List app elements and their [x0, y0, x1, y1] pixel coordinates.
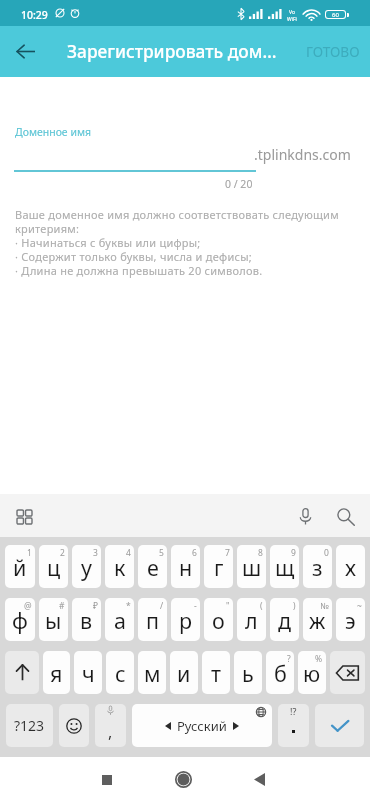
- button[interactable]: а: [105, 598, 134, 641]
- staticText: 10:29: [21, 8, 48, 22]
- staticText: %: [315, 653, 323, 665]
- button[interactable]: е: [138, 545, 167, 588]
- button[interactable]: !?: [278, 704, 309, 747]
- staticText: й: [13, 553, 27, 582]
- button[interactable]: ц: [39, 545, 68, 588]
- button[interactable]: б: [266, 651, 294, 694]
- other: Удалить: [336, 665, 359, 681]
- button[interactable]: д: [270, 598, 299, 641]
- staticText: Доменное имя: [15, 125, 92, 139]
- button[interactable]: п: [138, 598, 167, 641]
- button[interactable]: г: [204, 545, 233, 588]
- staticText: ~: [357, 600, 362, 612]
- button[interactable]: ю: [298, 651, 326, 694]
- button[interactable]: Главный экран: [161, 757, 206, 801]
- staticText: с: [115, 659, 126, 688]
- button[interactable]: л: [237, 598, 266, 641]
- staticText: щ: [275, 553, 295, 582]
- button[interactable]: ?123: [6, 704, 53, 747]
- staticText: п: [146, 606, 160, 635]
- staticText: г: [214, 553, 224, 582]
- button[interactable]: Shift: [5, 651, 39, 694]
- button[interactable]: ы: [39, 598, 68, 641]
- staticText: ": [226, 600, 230, 612]
- button[interactable]: х: [336, 545, 365, 588]
- button[interactable]: я: [43, 651, 70, 694]
- button[interactable]: ф: [5, 598, 35, 641]
- staticText: х: [345, 553, 356, 582]
- staticText: ?: [287, 653, 291, 665]
- button[interactable]: м: [138, 651, 166, 694]
- staticText: ц: [47, 553, 61, 582]
- button[interactable]: ь: [234, 651, 262, 694]
- button[interactable]: ч: [74, 651, 102, 694]
- button[interactable]: ГОТОВО: [295, 26, 370, 77]
- staticText: ): [293, 600, 296, 612]
- staticText: 6: [192, 547, 197, 559]
- staticText: 1: [27, 547, 32, 559]
- button[interactable]: т: [202, 651, 230, 694]
- staticText: д: [278, 606, 292, 635]
- staticText: 0 / 20: [225, 177, 253, 191]
- staticText: н: [179, 553, 193, 582]
- button[interactable]: Поиск: [325, 496, 366, 537]
- staticText: ф: [12, 606, 28, 635]
- staticText: к: [114, 553, 126, 582]
- staticText: р: [179, 606, 193, 635]
- staticText: ю: [303, 659, 321, 688]
- button[interactable]: щ: [270, 545, 299, 588]
- staticText: Зарегистрировать дом…: [67, 40, 277, 64]
- other: Shift: [15, 664, 30, 681]
- staticText: б: [274, 659, 287, 688]
- staticText: т: [211, 659, 221, 688]
- staticText: ы: [45, 606, 62, 635]
- staticText: ?123: [14, 716, 45, 735]
- button[interactable]: о: [204, 598, 233, 641]
- button[interactable]: й: [5, 545, 35, 588]
- staticText: ,: [108, 721, 113, 743]
- staticText: 60: [332, 11, 339, 18]
- button[interactable]: Удалить: [330, 651, 365, 694]
- staticText: ж: [309, 606, 326, 635]
- staticText: #: [59, 600, 65, 612]
- staticText: и: [177, 659, 191, 688]
- staticText: 8: [258, 547, 263, 559]
- button[interactable]: ж: [303, 598, 332, 641]
- staticText: в: [80, 606, 93, 635]
- staticText: 3: [93, 547, 98, 559]
- button[interactable]: Недавние приложения: [84, 757, 129, 801]
- button[interactable]: Готово: [315, 704, 364, 747]
- staticText: ч: [82, 659, 95, 688]
- staticText: /: [160, 600, 164, 612]
- staticText: э: [345, 606, 356, 635]
- staticText: @: [24, 600, 32, 612]
- button[interactable]: к: [105, 545, 134, 588]
- staticText: е: [147, 553, 159, 582]
- button[interactable]: з: [303, 545, 332, 588]
- staticText: ь: [242, 659, 254, 688]
- button[interactable]: Назад: [0, 26, 51, 77]
- staticText: -: [194, 600, 197, 612]
- staticText: Русский: [177, 717, 227, 735]
- button[interactable]: у: [72, 545, 101, 588]
- button[interactable]: с: [106, 651, 134, 694]
- button[interactable]: Назад: [237, 757, 282, 801]
- button[interactable]: Русский: [132, 704, 272, 747]
- staticText: (: [260, 600, 263, 612]
- button[interactable]: р: [171, 598, 200, 641]
- staticText: *: [126, 600, 131, 612]
- staticText: ₽: [93, 600, 98, 612]
- staticText: !?: [290, 705, 297, 717]
- button[interactable]: Голосовой ввод: [285, 496, 326, 537]
- button[interactable]: н: [171, 545, 200, 588]
- button[interactable]: ,: [95, 704, 126, 747]
- button[interactable]: ш: [237, 545, 266, 588]
- button[interactable]: Выбор клавиатуры: [4, 496, 45, 537]
- staticText: WiFi: [287, 16, 297, 23]
- staticText: а: [114, 606, 126, 635]
- button[interactable]: э: [336, 598, 365, 641]
- button[interactable]: Эмодзи: [59, 704, 89, 747]
- button[interactable]: в: [72, 598, 101, 641]
- staticText: я: [50, 659, 63, 688]
- button[interactable]: и: [170, 651, 198, 694]
